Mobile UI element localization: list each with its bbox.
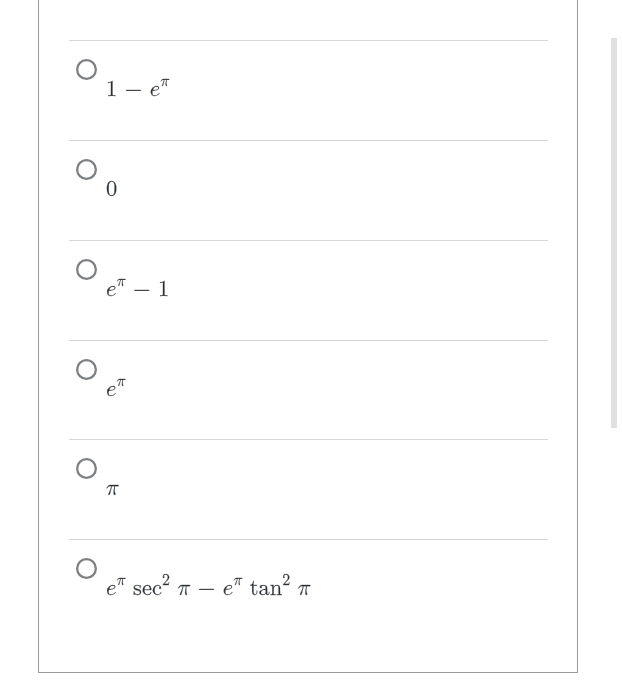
staticText: 0 — [106, 178, 118, 201]
staticText: 1 − 𝑒𝜋 — [106, 73, 170, 100]
staticText: 𝑒𝜋 sec2 𝜋 − 𝑒𝜋 tan2 𝜋 — [106, 572, 311, 599]
button[interactable]: e to the pi secant squared pi minus e to… — [38, 539, 577, 639]
button[interactable]: 0 — [38, 140, 577, 240]
staticText: 𝑒𝜋 — [106, 373, 126, 400]
staticText: 𝑒𝜋 − 1 — [106, 273, 170, 300]
staticText: 𝑒𝜋 sec2 𝜋 − 𝑒𝜋 tan2 𝜋 — [106, 572, 311, 599]
staticText: 𝜋 — [106, 477, 119, 500]
staticText: 𝑒𝜋 − 1 — [106, 273, 170, 300]
button[interactable]: 1 minus e to the pi — [38, 40, 577, 140]
button[interactable]: e to the pi — [38, 340, 577, 440]
staticText: 0 — [106, 178, 118, 201]
staticText: 𝑒𝜋 — [106, 373, 126, 400]
staticText: 1 − 𝑒𝜋 — [106, 73, 170, 100]
button[interactable]: pi — [38, 439, 577, 539]
staticText: 𝜋 — [106, 477, 119, 500]
button[interactable]: e to the pi minus 1 — [38, 240, 577, 340]
